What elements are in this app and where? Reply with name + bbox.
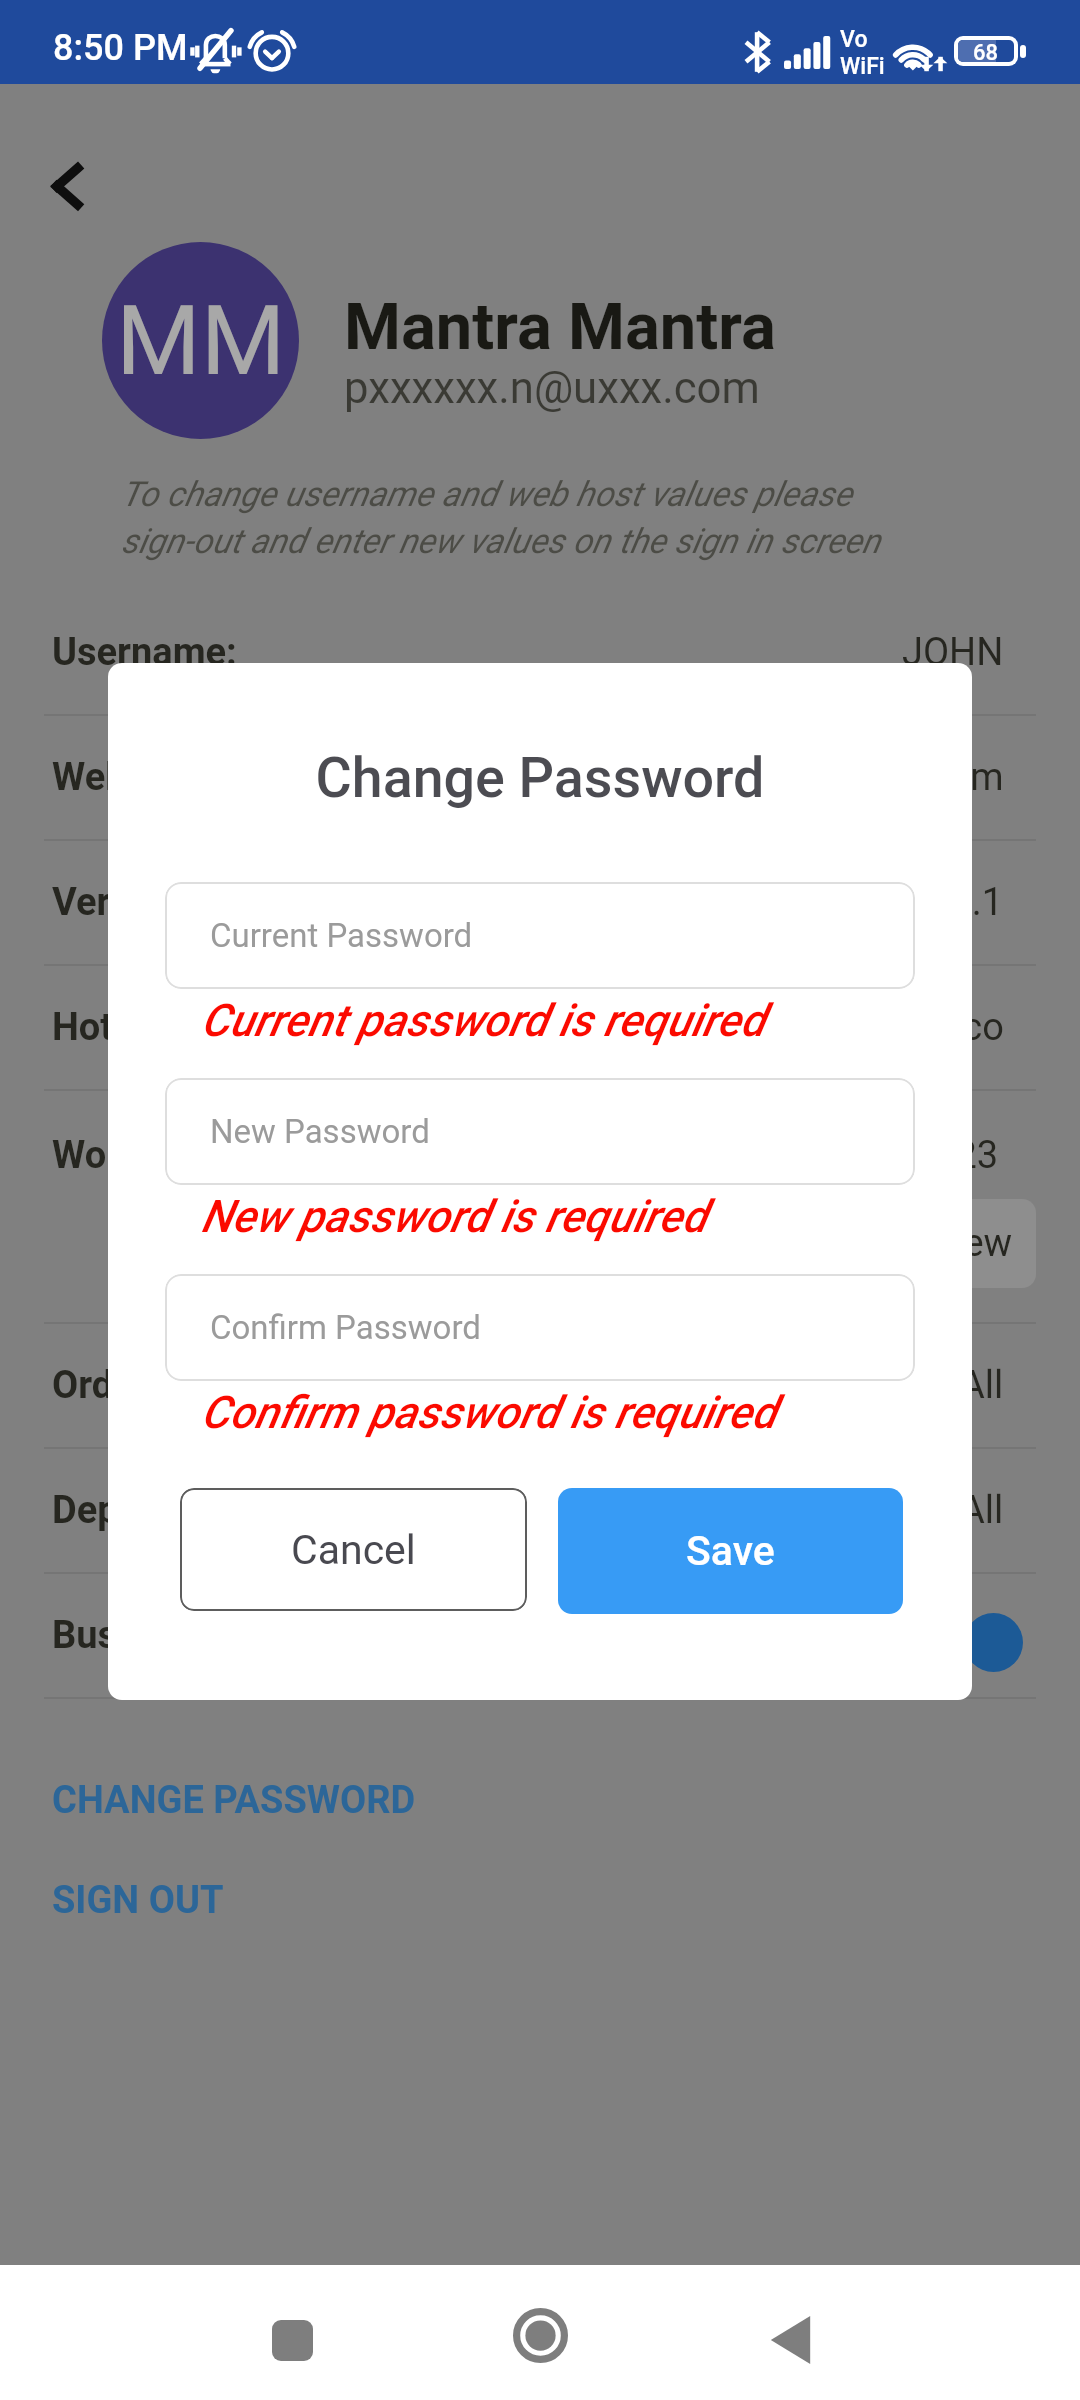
staticText: 68 bbox=[973, 40, 999, 62]
staticText: pxxxxxx.n@uxxx.com bbox=[344, 362, 760, 413]
button[interactable]: Back bbox=[750, 2300, 830, 2380]
staticText: CHANGE PASSWORD bbox=[52, 1778, 416, 1823]
staticText: New password is required bbox=[201, 1190, 707, 1243]
button[interactable]: Current Password bbox=[165, 882, 915, 989]
staticText: 8:50 PM bbox=[53, 27, 188, 69]
button[interactable]: Confirm Password bbox=[165, 1274, 915, 1381]
staticText: Marco bbox=[896, 1005, 1004, 1050]
staticText: Username: bbox=[52, 630, 237, 675]
staticText: Cancel bbox=[291, 1526, 416, 1574]
staticText: Confirm Password bbox=[210, 1308, 481, 1347]
staticText: Hotel: bbox=[52, 1005, 155, 1050]
staticText: All bbox=[960, 1363, 1004, 1408]
button[interactable]: Version: bbox=[0, 841, 1080, 964]
staticText: Current password is required bbox=[201, 994, 765, 1047]
staticText: WiFi bbox=[840, 53, 885, 80]
button[interactable]: CHANGE PASSWORD bbox=[52, 1778, 416, 1823]
staticText: xxx.com bbox=[862, 755, 1004, 800]
button[interactable]: Home bbox=[500, 2295, 580, 2375]
staticText: Version: bbox=[52, 880, 194, 925]
staticText: Work Date: bbox=[52, 1133, 239, 1178]
staticText: 1.0.1 bbox=[919, 880, 1004, 925]
staticText: Confirm password is required bbox=[201, 1386, 777, 1439]
staticText: Order by: bbox=[52, 1363, 209, 1408]
button[interactable]: Save bbox=[558, 1488, 903, 1614]
staticText: SIGN OUT bbox=[52, 1878, 224, 1923]
button[interactable]: Back bbox=[30, 150, 100, 220]
button[interactable]: Departments: bbox=[0, 1449, 1080, 1572]
button[interactable]: Recent apps bbox=[252, 2300, 332, 2380]
button[interactable]: New Password bbox=[165, 1078, 915, 1185]
button[interactable]: Add bbox=[964, 1613, 1023, 1672]
staticText: Departments: bbox=[52, 1488, 285, 1533]
staticText: Vo bbox=[840, 26, 868, 53]
button[interactable]: Web Host: bbox=[0, 716, 1080, 839]
button[interactable]: Hotel: bbox=[0, 966, 1080, 1089]
staticText: MM bbox=[116, 284, 286, 398]
button[interactable]: Username: bbox=[0, 591, 1080, 714]
button[interactable]: Cancel bbox=[180, 1488, 527, 1611]
staticText: Mantra Mantra bbox=[344, 289, 776, 365]
staticText: Save bbox=[686, 1527, 775, 1575]
staticText: Business Date: bbox=[52, 1613, 307, 1658]
button[interactable]: SIGN OUT bbox=[52, 1878, 224, 1923]
staticText: New Password bbox=[210, 1112, 430, 1151]
button[interactable]: Business Date: bbox=[0, 1574, 1080, 1697]
staticText: Web Host: bbox=[52, 755, 228, 800]
button[interactable]: View bbox=[906, 1199, 1036, 1288]
staticText: JOHN bbox=[902, 630, 1004, 675]
button[interactable]: Order by: bbox=[0, 1324, 1080, 1447]
staticText: To change username and web host values p… bbox=[121, 474, 881, 562]
staticText: Current Password bbox=[210, 916, 473, 955]
staticText: Change Password bbox=[108, 746, 972, 811]
staticText: 01/23 bbox=[897, 1133, 999, 1178]
staticText: All bbox=[960, 1488, 1004, 1533]
staticText: View bbox=[930, 1221, 1013, 1266]
